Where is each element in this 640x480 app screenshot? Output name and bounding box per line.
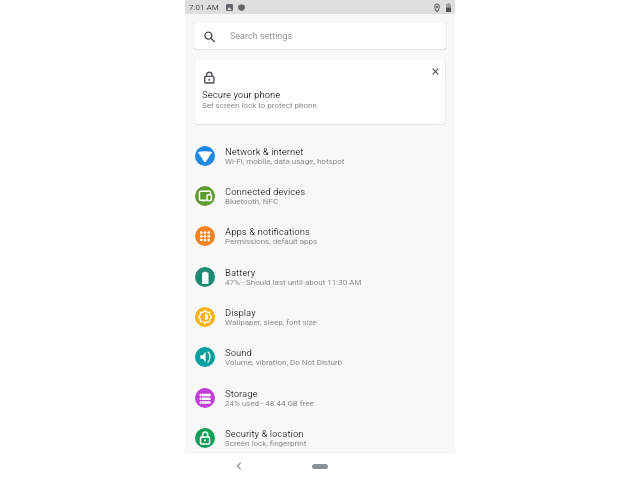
staticText: Connected devices [225, 186, 306, 197]
staticText: Screen lock, fingerprint [225, 439, 307, 448]
button[interactable]: Battery [185, 257, 455, 297]
staticText: Volume, vibration, Do Not Disturb [225, 358, 343, 367]
staticText: Battery [225, 267, 256, 278]
staticText: Search settings [230, 31, 293, 42]
button[interactable]: Home [309, 460, 331, 472]
button[interactable]: Connected devices [185, 176, 455, 216]
button[interactable]: Search settings [194, 23, 446, 49]
staticText: 24% used - 48.44 GB free [225, 399, 314, 408]
button[interactable]: Security & location [185, 418, 455, 452]
staticText: Network & internet [225, 146, 304, 157]
button[interactable]: Sound [185, 337, 455, 377]
staticText: Permissions, default apps [225, 237, 318, 246]
staticText: Display [225, 307, 256, 318]
staticText: Set screen lock to protect phone [202, 101, 317, 110]
button[interactable]: Storage [185, 378, 455, 418]
button[interactable]: Back [232, 459, 246, 473]
staticText: 47% - Should last until about 11:30 AM [225, 278, 362, 287]
button[interactable]: Display [185, 297, 455, 337]
staticText: Wi-Fi, mobile, data usage, hotspot [225, 157, 345, 166]
button[interactable]: Secure your phone [195, 60, 445, 124]
staticText: Storage [225, 388, 258, 399]
staticText: Sound [225, 347, 252, 358]
staticText: Security & location [225, 428, 304, 439]
button[interactable]: Network & internet [185, 136, 455, 176]
staticText: Wallpaper, sleep, font size [225, 318, 317, 327]
button[interactable]: Dismiss [428, 64, 442, 78]
staticText: Bluetooth, NFC [225, 197, 279, 206]
staticText: Secure your phone [202, 89, 281, 100]
staticText: 7:01 AM [189, 3, 219, 12]
staticText: Apps & notifications [225, 226, 310, 237]
button[interactable]: Apps & notifications [185, 216, 455, 256]
